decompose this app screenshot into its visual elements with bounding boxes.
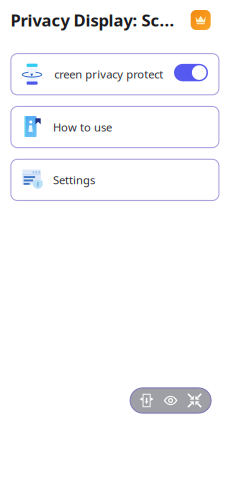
button[interactable]: How to use — [11, 106, 219, 148]
staticText: Settings — [53, 172, 95, 188]
staticText: How to use — [53, 119, 112, 135]
button[interactable]: Collapse toolbar — [184, 388, 206, 413]
button[interactable]: Preview — [160, 388, 182, 413]
button[interactable]: Premium — [191, 10, 211, 30]
staticText: Privacy Display: Sc... — [10, 9, 174, 31]
staticText: creen privacy protect — [54, 67, 163, 82]
button[interactable]: Adjust screen size — [136, 388, 158, 413]
button[interactable]: creen privacy protect — [11, 54, 219, 95]
button[interactable]: Settings — [11, 159, 219, 200]
